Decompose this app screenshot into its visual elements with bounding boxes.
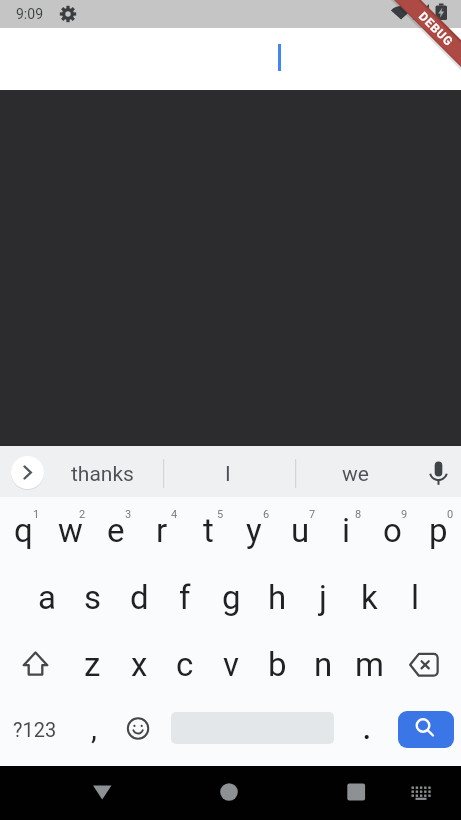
button[interactable]: u — [277, 497, 323, 564]
button[interactable]: k — [346, 564, 392, 631]
button[interactable]: v — [208, 631, 254, 698]
button[interactable] — [392, 698, 461, 766]
staticText: 6 — [263, 508, 270, 521]
button[interactable]: s — [70, 564, 116, 631]
button[interactable]: y — [231, 497, 277, 564]
button[interactable] — [420, 454, 457, 491]
staticText: 4 — [171, 508, 178, 521]
staticText: u — [291, 511, 310, 550]
staticText: o — [383, 511, 402, 550]
button[interactable] — [400, 768, 442, 818]
button[interactable] — [346, 698, 392, 766]
button[interactable]: i — [323, 497, 369, 564]
staticText: 1 — [33, 508, 40, 521]
staticText: c — [176, 645, 194, 684]
staticText: g — [222, 578, 241, 617]
staticText: 9 — [401, 508, 408, 521]
button[interactable] — [11, 456, 44, 489]
staticText: i — [342, 511, 351, 550]
button[interactable]: f — [162, 564, 208, 631]
button[interactable]: j — [300, 564, 346, 631]
button[interactable]: t — [185, 497, 231, 564]
staticText: r — [156, 511, 168, 550]
button[interactable]: , — [69, 698, 115, 766]
staticText: m — [355, 645, 384, 684]
staticText: w — [58, 511, 83, 550]
button[interactable]: p — [415, 497, 461, 564]
button[interactable]: l — [392, 564, 438, 631]
button[interactable]: a — [23, 564, 70, 631]
button[interactable]: I — [188, 446, 268, 497]
staticText: q — [14, 511, 33, 550]
staticText: 8 — [355, 508, 362, 521]
button[interactable]: x — [116, 631, 162, 698]
staticText: 3 — [125, 508, 132, 521]
button[interactable]: q — [0, 497, 47, 564]
staticText: e — [107, 511, 125, 550]
staticText: 5 — [217, 508, 224, 521]
button[interactable] — [0, 631, 69, 698]
staticText: x — [131, 645, 148, 684]
staticText: 9:09 — [16, 6, 43, 22]
staticText: l — [411, 578, 420, 617]
staticText: z — [84, 645, 101, 684]
button[interactable] — [115, 698, 161, 766]
staticText: s — [84, 578, 102, 617]
staticText: thanks — [71, 462, 134, 487]
staticText: we — [342, 462, 369, 487]
staticText: p — [429, 511, 448, 550]
staticText: a — [38, 578, 56, 617]
button[interactable]: h — [254, 564, 300, 631]
staticText: v — [223, 645, 239, 684]
staticText: 7 — [309, 508, 316, 521]
staticText: f — [179, 578, 191, 617]
staticText: DEBUG — [416, 9, 456, 49]
button[interactable]: w — [47, 497, 93, 564]
staticText: n — [314, 645, 333, 684]
button[interactable] — [78, 768, 126, 818]
button[interactable]: n — [300, 631, 346, 698]
staticText: y — [246, 511, 262, 550]
button[interactable] — [392, 631, 461, 698]
button[interactable]: e — [93, 497, 139, 564]
button[interactable]: ?123 — [0, 698, 69, 766]
staticText: I — [225, 462, 231, 487]
button[interactable]: d — [116, 564, 162, 631]
staticText: t — [203, 511, 214, 550]
button[interactable]: m — [346, 631, 392, 698]
button[interactable]: c — [162, 631, 208, 698]
button[interactable]: z — [69, 631, 116, 698]
staticText: h — [268, 578, 287, 617]
button[interactable] — [332, 768, 380, 818]
button[interactable] — [205, 768, 253, 818]
staticText: d — [130, 578, 149, 617]
staticText: b — [268, 645, 287, 684]
button[interactable]: g — [208, 564, 254, 631]
staticText: , — [91, 711, 97, 746]
staticText: ?123 — [13, 718, 57, 741]
staticText: j — [319, 578, 327, 617]
staticText: 2 — [79, 508, 86, 521]
button[interactable]: we — [315, 446, 395, 497]
staticText: k — [361, 578, 378, 617]
button[interactable]: r — [139, 497, 185, 564]
button[interactable]: b — [254, 631, 300, 698]
button[interactable]: o — [369, 497, 415, 564]
button[interactable]: thanks — [62, 446, 142, 497]
staticText: 0 — [447, 508, 454, 521]
button[interactable] — [161, 698, 346, 766]
